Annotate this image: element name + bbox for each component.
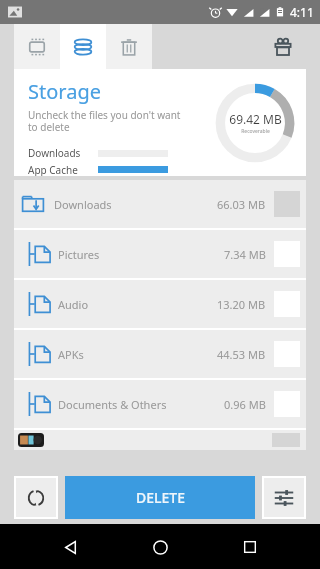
staticText: 69.42 MB	[229, 111, 282, 127]
button[interactable]: Refresh	[14, 476, 58, 519]
staticText: Audio	[58, 297, 89, 312]
staticText: App Cache	[28, 163, 78, 176]
staticText: Storage	[28, 78, 101, 105]
staticText: Documents & Others	[58, 397, 167, 412]
button[interactable]: Storage tab	[60, 24, 106, 69]
button[interactable]: Audio	[14, 280, 306, 328]
button[interactable]: Recents	[230, 527, 270, 567]
button[interactable]: Home	[140, 527, 180, 567]
staticText: 44.53 MB	[217, 347, 266, 362]
button[interactable]: Tab	[106, 24, 152, 69]
button[interactable]: Settings	[262, 476, 306, 519]
button[interactable]: Gift	[268, 32, 298, 62]
button[interactable]: Downloads	[14, 180, 306, 228]
button[interactable]	[14, 430, 306, 450]
staticText: DELETE	[136, 488, 185, 507]
button[interactable]: Tab	[14, 24, 60, 69]
button[interactable]: Pictures	[14, 230, 306, 278]
button[interactable]: Documents & Others	[14, 380, 306, 428]
staticText: 0.96 MB	[224, 397, 266, 412]
staticText: Pictures	[58, 247, 100, 262]
staticText: 13.20 MB	[217, 297, 266, 312]
button[interactable]: DELETE	[65, 476, 255, 519]
staticText: Downloads	[28, 146, 81, 160]
button[interactable]: APKs	[14, 330, 306, 378]
staticText: 4:11	[290, 4, 314, 20]
staticText: 7.34 MB	[224, 247, 266, 262]
staticText: APKs	[58, 347, 84, 362]
button[interactable]: Back	[50, 527, 90, 567]
staticText: 66.03 MB	[217, 197, 266, 212]
staticText: Recoverable	[241, 128, 270, 135]
staticText: Uncheck the files you don't want to dele…	[28, 108, 181, 134]
staticText: Downloads	[54, 197, 112, 212]
